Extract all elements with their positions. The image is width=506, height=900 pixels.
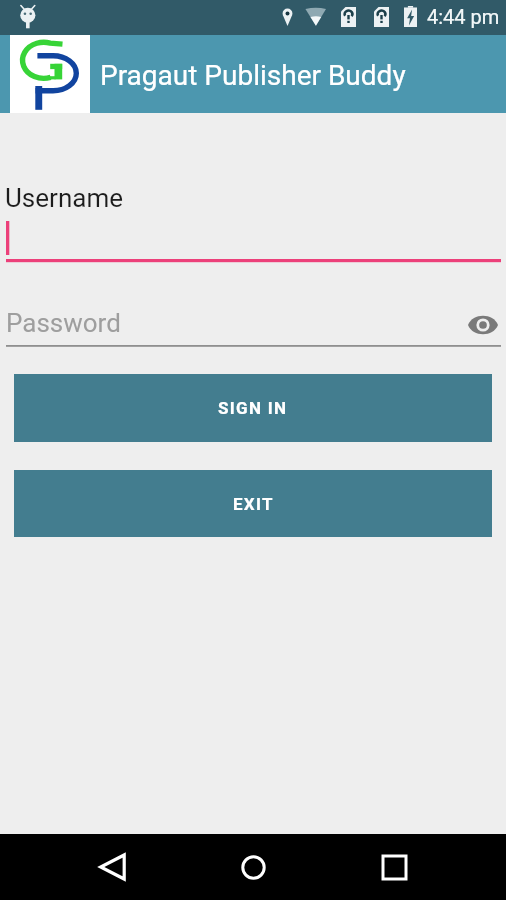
- staticText: Password: [6, 308, 121, 338]
- staticText: Pragaut Publisher Buddy: [100, 59, 406, 92]
- button[interactable]: Home: [225, 839, 281, 895]
- button[interactable]: Recents: [366, 839, 422, 895]
- button[interactable]: [0, 218, 506, 263]
- staticText: 4:44 pm: [427, 5, 500, 28]
- staticText: SIGN IN: [218, 398, 288, 418]
- button[interactable]: Show password: [466, 310, 500, 340]
- button[interactable]: Back: [85, 839, 141, 895]
- button[interactable]: SIGN IN: [14, 374, 492, 442]
- button[interactable]: EXIT: [14, 470, 492, 537]
- button[interactable]: Password: [0, 305, 506, 347]
- staticText: EXIT: [233, 494, 274, 514]
- staticText: Username: [5, 183, 123, 213]
